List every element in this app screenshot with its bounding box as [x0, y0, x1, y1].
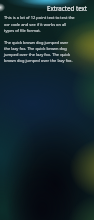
staticText: Extracted text: [0, 4, 87, 12]
staticText: This is a lot of 12 point text to test t…: [4, 15, 75, 63]
